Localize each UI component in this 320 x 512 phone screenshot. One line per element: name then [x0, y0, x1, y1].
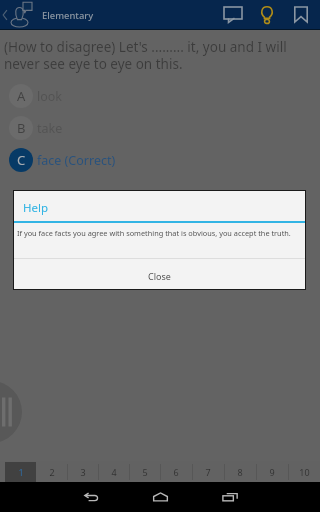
button[interactable]: 9 — [256, 462, 288, 482]
staticText: 10 — [299, 466, 310, 478]
staticText: A — [17, 87, 26, 105]
staticText: 1 — [18, 466, 24, 478]
staticText: look — [37, 88, 63, 105]
staticText: 9 — [269, 466, 275, 478]
button[interactable]: Pause — [0, 381, 22, 443]
button[interactable]: Hint — [250, 0, 284, 30]
button[interactable]: 2 — [36, 462, 67, 482]
staticText: 5 — [142, 466, 148, 478]
button[interactable]: Home — [130, 482, 190, 512]
button[interactable]: 7 — [192, 462, 224, 482]
button[interactable]: Navigate up — [0, 0, 33, 30]
button[interactable]: 6 — [160, 462, 192, 482]
button[interactable]: Bookmark — [284, 0, 318, 30]
button[interactable]: Comments — [216, 0, 250, 30]
button[interactable]: 10 — [288, 462, 320, 482]
button[interactable]: 8 — [224, 462, 256, 482]
staticText: 3 — [80, 466, 86, 478]
staticText: take — [37, 120, 63, 137]
staticText: 8 — [237, 466, 243, 478]
staticText: Help — [23, 200, 49, 216]
staticText: 7 — [205, 466, 211, 478]
button[interactable]: 4 — [98, 462, 129, 482]
staticText: Close — [148, 270, 171, 282]
staticText: 6 — [173, 466, 179, 478]
staticText: 4 — [111, 466, 117, 478]
button[interactable]: Back — [60, 482, 120, 512]
button[interactable]: 5 — [129, 462, 160, 482]
button[interactable]: 3 — [67, 462, 98, 482]
staticText: 2 — [49, 466, 55, 478]
staticText: (How to disagree) Let's ......... it, yo… — [4, 38, 314, 73]
staticText: face (Correct) — [37, 152, 116, 169]
staticText: If you face facts you agree with somethi… — [17, 228, 291, 238]
button[interactable]: C — [0, 144, 320, 176]
button[interactable]: Recent apps — [200, 482, 260, 512]
button[interactable]: 1 — [5, 462, 36, 482]
button[interactable]: Close — [14, 259, 305, 289]
staticText: B — [17, 119, 26, 137]
staticText: C — [17, 151, 26, 169]
staticText: Elementary — [42, 9, 94, 22]
